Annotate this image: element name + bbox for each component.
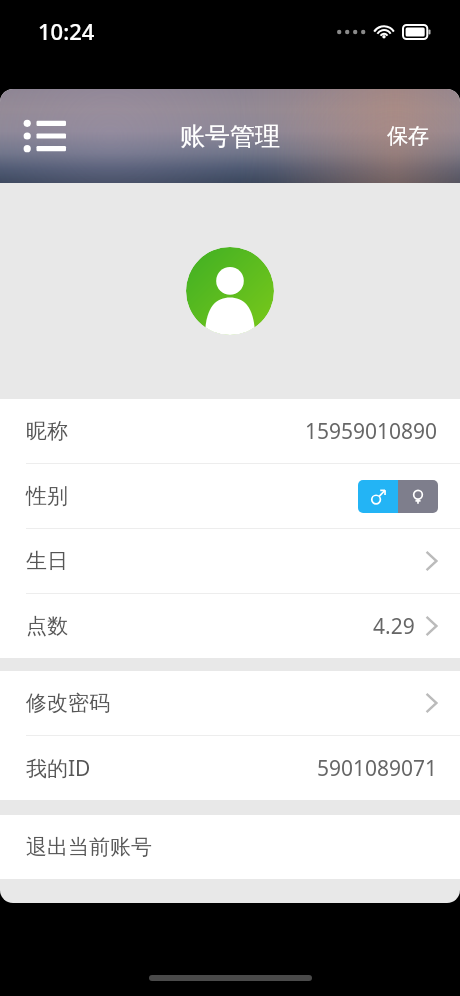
button[interactable]: Avatar xyxy=(186,247,274,335)
button[interactable]: 我的ID xyxy=(0,736,460,800)
button[interactable]: Menu xyxy=(16,106,76,166)
staticText: 10:24 xyxy=(38,16,95,46)
staticText: 生日 xyxy=(26,548,68,574)
staticText: 修改密码 xyxy=(26,690,110,716)
button[interactable]: 保存 xyxy=(366,106,450,166)
button[interactable]: Gender xyxy=(358,480,438,513)
button[interactable]: 点数 xyxy=(0,594,460,658)
staticText: 性别 xyxy=(26,483,68,509)
staticText: 昵称 xyxy=(26,418,68,444)
staticText: 5901089071 xyxy=(317,754,438,783)
button[interactable]: 生日 xyxy=(0,529,460,593)
staticText: 保存 xyxy=(387,123,429,149)
staticText: 4.29 xyxy=(373,612,415,641)
staticText: 我的ID xyxy=(26,754,91,783)
staticText: 15959010890 xyxy=(305,417,438,446)
button[interactable]: 修改密码 xyxy=(0,671,460,735)
button[interactable]: 昵称 xyxy=(0,399,460,463)
staticText: 点数 xyxy=(26,613,68,639)
staticText: 账号管理 xyxy=(180,121,280,152)
staticText: 退出当前账号 xyxy=(26,834,152,860)
button[interactable]: 退出当前账号 xyxy=(0,815,460,879)
button[interactable]: 性别 xyxy=(0,464,460,528)
